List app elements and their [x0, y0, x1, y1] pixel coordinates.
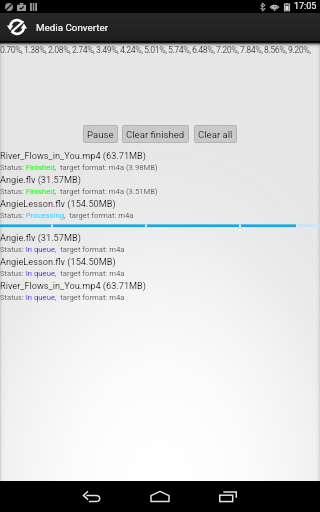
staticText: Angie.flv (31.57MB): [0, 174, 81, 185]
button[interactable]: Clear finished: [122, 125, 189, 143]
staticText: Clear all: [198, 129, 233, 140]
button[interactable]: Pause: [83, 125, 118, 143]
button[interactable]: Back: [58, 481, 126, 512]
staticText: River_Flows_in_You.mp4 (63.71MB): [0, 150, 146, 161]
staticText: AngieLesson.flv (154.50MB): [0, 256, 116, 267]
button[interactable]: AngieLesson.flv (154.50MB): [0, 197, 320, 231]
staticText: Pause: [87, 129, 114, 140]
staticText: Status: In queue, target format: m4a: [0, 269, 125, 278]
staticText: Status: Finished, target format: m4a (3.…: [0, 163, 158, 172]
button[interactable]: Angie.flv (31.57MB): [0, 231, 320, 255]
staticText: Status: In queue, target format: m4a: [0, 245, 125, 254]
staticText: River_Flows_in_You.mp4 (63.71MB): [0, 280, 146, 291]
button[interactable]: Home: [126, 481, 194, 512]
staticText: 17:05: [294, 1, 317, 12]
staticText: Clear finished: [126, 129, 185, 140]
staticText: Status: Finished, target format: m4a (3.…: [0, 187, 158, 196]
button[interactable]: Angie.flv (31.57MB): [0, 173, 320, 197]
staticText: Angie.flv (31.57MB): [0, 232, 81, 243]
button[interactable]: Recents: [194, 481, 262, 512]
staticText: Status: Processing, target format: m4a: [0, 211, 134, 220]
staticText: AngieLesson.flv (154.50MB): [0, 198, 116, 209]
button[interactable]: River_Flows_in_You.mp4 (63.71MB): [0, 149, 320, 173]
staticText: 0.70%, 1.38%, 2.08%, 2.74%, 3.49%, 4.24%…: [0, 45, 311, 55]
staticText: Status: In queue, target format: m4a: [0, 293, 125, 302]
button[interactable]: AngieLesson.flv (154.50MB): [0, 255, 320, 279]
button[interactable]: River_Flows_in_You.mp4 (63.71MB): [0, 279, 320, 303]
button[interactable]: Clear all: [194, 125, 237, 143]
staticText: Media Converter: [36, 22, 108, 33]
